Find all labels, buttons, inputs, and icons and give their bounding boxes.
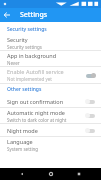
button[interactable]: Recents [73, 168, 85, 180]
staticText: App in background [7, 52, 57, 59]
button[interactable]: Enable Autofill service [0, 67, 101, 83]
staticText: Not implemented yet [7, 76, 52, 82]
staticText: Switch to dark color at night [7, 117, 67, 123]
staticText: Other settings [7, 86, 42, 93]
button[interactable]: Home [45, 168, 57, 180]
button[interactable]: Night mode [0, 124, 101, 136]
staticText: System setting [7, 146, 39, 152]
button[interactable]: App in background [0, 51, 101, 66]
staticText: Never [7, 60, 20, 66]
staticText: Enable Autofill service [7, 68, 64, 75]
staticText: Language [7, 138, 33, 145]
button[interactable]: Back [16, 168, 28, 180]
staticText: Sign out confirmation [7, 98, 64, 105]
button[interactable]: Back [0, 8, 14, 22]
staticText: Automatic night mode [7, 109, 65, 116]
staticText: Security settings [7, 44, 42, 50]
button[interactable]: Automatic night mode [0, 108, 101, 123]
button[interactable]: Security [0, 35, 101, 50]
staticText: Security [7, 36, 28, 43]
staticText: Night mode [7, 127, 38, 134]
button[interactable]: Sign out confirmation [0, 95, 101, 107]
staticText: Security settings [7, 26, 47, 33]
staticText: Settings [20, 10, 48, 20]
button[interactable]: Language [0, 137, 101, 152]
